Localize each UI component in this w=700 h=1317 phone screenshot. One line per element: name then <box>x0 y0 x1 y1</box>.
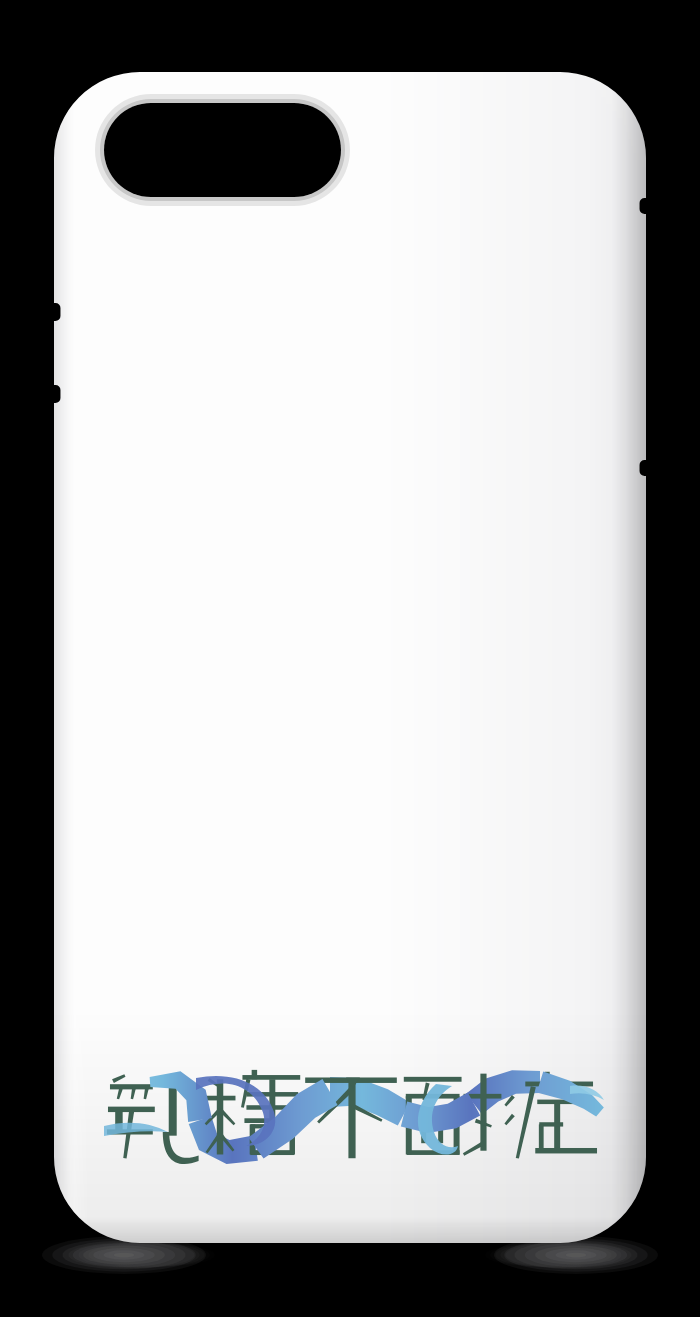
button[interactable]: Phone case product photo <box>0 0 700 1317</box>
